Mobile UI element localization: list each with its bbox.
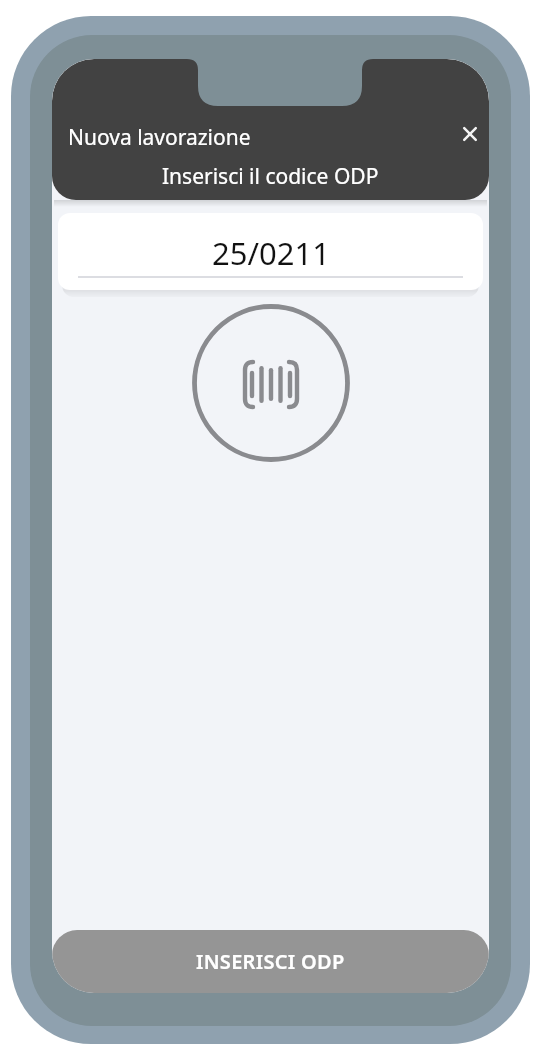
staticText: INSERISCI ODP	[196, 948, 345, 975]
button[interactable]: 25/0211	[58, 213, 483, 290]
button[interactable]: INSERISCI ODP	[52, 930, 489, 993]
button[interactable]	[194, 306, 348, 460]
button[interactable]	[456, 120, 484, 148]
staticText: 25/0211	[212, 232, 330, 274]
staticText: Nuova lavorazione	[68, 123, 251, 152]
staticText: Inserisci il codice ODP	[162, 162, 379, 191]
